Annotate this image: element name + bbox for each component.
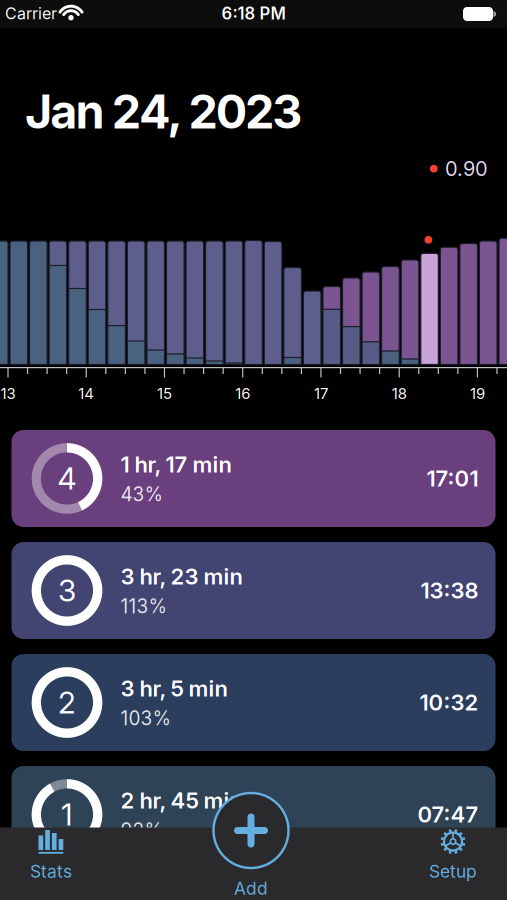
staticText: 14 [78, 384, 94, 403]
staticText: Carrier [5, 4, 57, 23]
staticText: 6:18 PM [221, 3, 285, 24]
staticText: 4 [57, 460, 76, 497]
staticText: 0.90 [445, 157, 488, 181]
staticText: Stats [30, 861, 72, 882]
staticText: 17:01 [426, 465, 478, 492]
staticText: 17 [314, 384, 328, 403]
staticText: 18 [392, 384, 407, 403]
staticText: 3 hr, 5 min [120, 675, 227, 702]
staticText: Setup [429, 861, 477, 882]
staticText: 92% [120, 819, 163, 842]
staticText: 19 [470, 384, 485, 403]
staticText: 13 [0, 384, 15, 403]
staticText: 1 hr, 17 min [120, 451, 231, 478]
button[interactable]: 3 [11, 542, 495, 639]
staticText: Add [234, 878, 268, 899]
button[interactable]: Setup [398, 825, 507, 885]
staticText: Jan 24, 2023 [25, 83, 302, 140]
staticText: 15 [157, 384, 172, 403]
button[interactable]: 1 [11, 766, 495, 863]
staticText: 10:32 [419, 689, 478, 716]
staticText: 103% [120, 707, 171, 730]
staticText: 07:47 [417, 801, 478, 828]
button[interactable]: Add [211, 790, 291, 870]
staticText: 13:38 [420, 577, 478, 604]
staticText: 113% [120, 595, 167, 618]
staticText: 3 [58, 572, 76, 609]
staticText: 43% [120, 483, 163, 506]
staticText: 3 hr, 23 min [120, 563, 242, 590]
staticText: 2 hr, 45 min [120, 787, 242, 814]
staticText: 2 [58, 684, 76, 721]
button[interactable]: Stats [0, 826, 106, 886]
staticText: 16 [235, 384, 250, 403]
staticText: 1 [61, 796, 73, 833]
button[interactable]: 4 [11, 430, 495, 527]
button[interactable]: 2 [11, 654, 495, 751]
